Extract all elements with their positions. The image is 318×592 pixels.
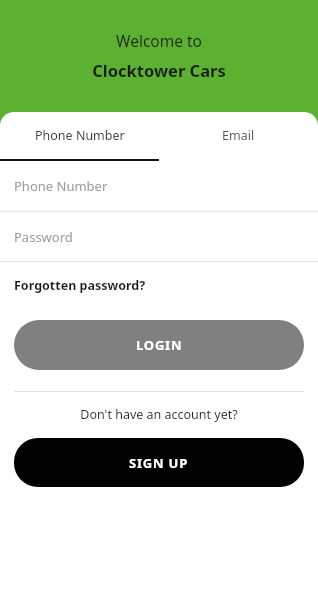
staticText: Email <box>222 127 255 144</box>
button[interactable]: Forgotten password? <box>0 262 318 308</box>
staticText: Phone Number <box>14 177 108 195</box>
staticText: Phone Number <box>35 127 125 144</box>
button[interactable]: Password <box>0 212 318 261</box>
button[interactable]: Phone Number <box>0 161 318 211</box>
staticText: Don't have an account yet? <box>0 406 318 423</box>
button[interactable]: LOGIN <box>14 320 304 370</box>
staticText: LOGIN <box>136 336 183 354</box>
button[interactable]: Phone Number <box>0 112 159 159</box>
staticText: Welcome to <box>116 30 202 51</box>
button[interactable]: SIGN UP <box>14 438 304 487</box>
staticText: Forgotten password? <box>14 277 146 294</box>
staticText: SIGN UP <box>129 454 189 472</box>
staticText: Password <box>14 228 73 246</box>
button[interactable]: Email <box>159 112 318 159</box>
staticText: Clocktower Cars <box>92 59 226 81</box>
